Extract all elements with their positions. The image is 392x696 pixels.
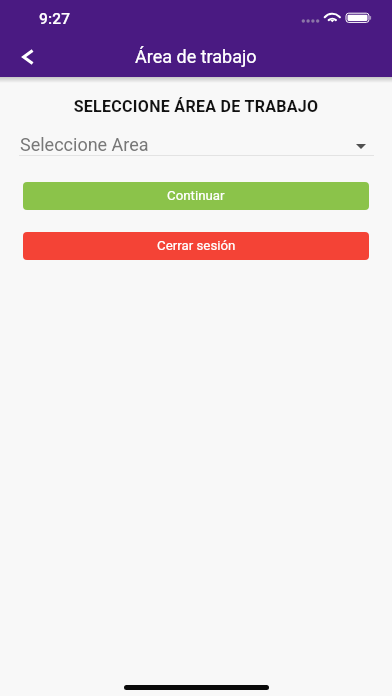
staticText: Seleccione Area [20, 134, 149, 155]
button[interactable]: Back [7, 36, 49, 78]
staticText: SELECCIONE ÁREA DE TRABAJO [0, 97, 392, 116]
staticText: Cerrar sesión [157, 238, 236, 254]
staticText: Continuar [167, 188, 225, 204]
button[interactable]: Seleccione Area [19, 134, 374, 156]
button[interactable]: Continuar [23, 182, 369, 210]
staticText: 9:27 [39, 10, 71, 28]
button[interactable]: Cerrar sesión [23, 232, 369, 260]
staticText: Área de trabajo [135, 46, 257, 67]
